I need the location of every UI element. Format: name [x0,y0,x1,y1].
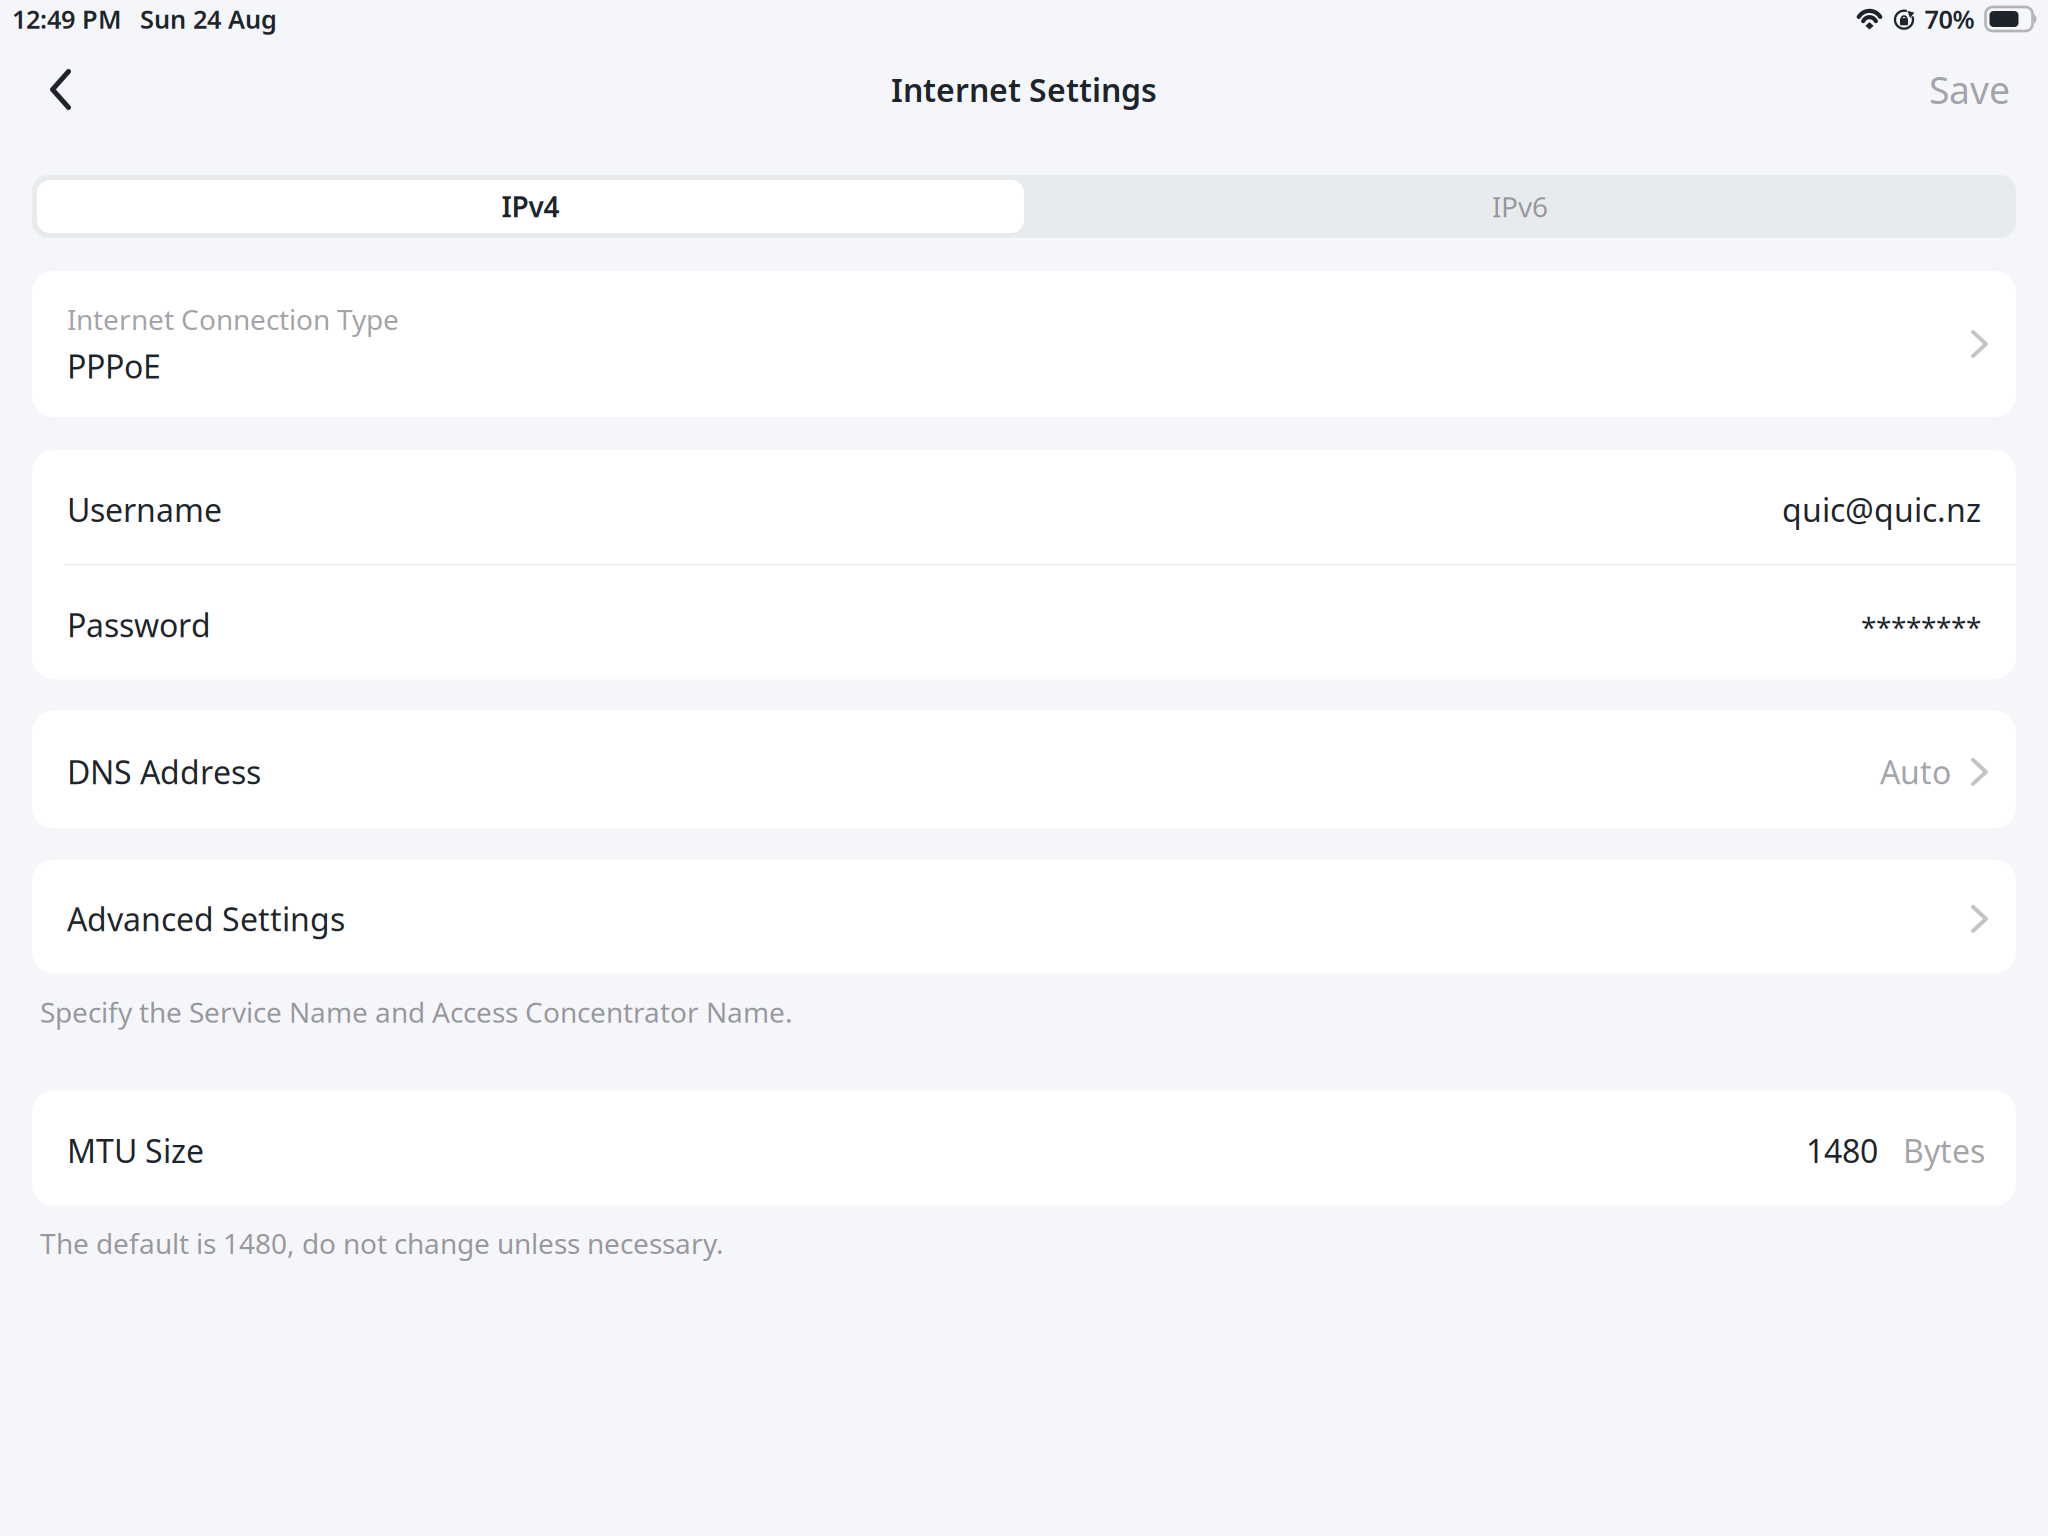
staticText: MTU Size [67,1129,204,1172]
staticText: DNS Address [67,751,261,793]
button[interactable]: Username [32,450,2016,564]
staticText: quic@quic.nz [1782,488,1981,531]
staticText: Specify the Service Name and Access Conc… [40,993,793,1031]
button[interactable]: DNS Address [32,710,2016,828]
button[interactable]: Save [1895,53,2048,126]
staticText: 70% [1924,2,1974,36]
staticText: IPv6 [1492,188,1548,225]
staticText: 12:49 PM [12,2,122,36]
button[interactable]: Password [32,565,2016,679]
staticText: The default is 1480, do not change unles… [40,1225,724,1262]
staticText: Bytes [1903,1129,1985,1172]
staticText: Password [67,604,211,646]
staticText: IPv4 [501,188,559,225]
staticText: PPPoE [67,345,161,387]
button[interactable]: Back [0,57,105,122]
staticText: Internet Connection Type [67,301,399,338]
staticText: Auto [1880,751,1951,793]
staticText: 1480 [1806,1129,1878,1172]
button[interactable]: IPv6 [1024,175,2016,238]
staticText: Username [67,488,222,531]
button[interactable]: Advanced Settings [32,859,2016,973]
button[interactable]: Internet Connection Type [32,271,2016,417]
button[interactable]: MTU Size [32,1091,2016,1206]
staticText: Save [1929,65,2010,114]
button[interactable]: IPv4 [32,180,1024,233]
staticText: Internet Settings [891,68,1157,111]
staticText: Sun 24 Aug [140,2,277,36]
staticText: ******** [1861,608,1981,645]
staticText: Advanced Settings [67,898,345,940]
